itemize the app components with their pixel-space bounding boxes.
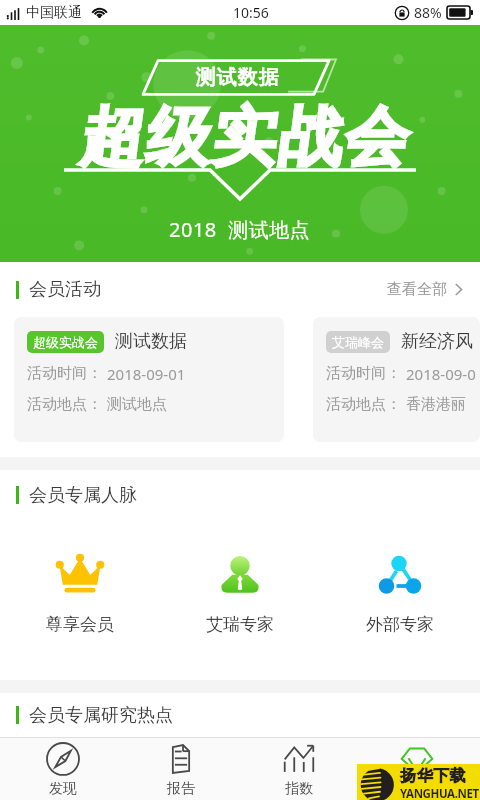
- button[interactable]: 报告: [126, 737, 236, 800]
- button[interactable]: 指数: [244, 737, 354, 800]
- staticText: 测试数据: [115, 330, 187, 353]
- staticText: 2018-09-0: [406, 364, 476, 384]
- staticText: 2018 测试地点: [169, 216, 311, 243]
- staticText: 活动地点：: [27, 395, 102, 414]
- button[interactable]: 会员: [362, 737, 472, 800]
- button[interactable]: 测试数据: [0, 25, 480, 262]
- staticText: 88%: [414, 3, 442, 22]
- button[interactable]: 外部专家: [320, 520, 480, 680]
- staticText: 香港港丽酒: [406, 395, 480, 414]
- staticText: 测试数据: [195, 65, 279, 90]
- staticText: 会员专属人脉: [29, 484, 137, 507]
- staticText: 指数: [285, 780, 313, 798]
- staticText: 活动时间：: [326, 364, 401, 383]
- button[interactable]: 发现: [8, 737, 118, 800]
- staticText: 发现: [49, 780, 77, 798]
- staticText: 超级实战会: [75, 97, 405, 178]
- staticText: 10:56: [233, 3, 269, 22]
- staticText: 测试地点: [107, 395, 167, 414]
- staticText: 2018-09-01: [107, 364, 186, 384]
- staticText: 扬华下载: [400, 766, 466, 786]
- staticText: 中国联通: [26, 4, 82, 22]
- button[interactable]: 查看全部: [387, 280, 464, 299]
- staticText: 超级实战会: [33, 334, 98, 350]
- staticText: 报告: [167, 780, 195, 798]
- button[interactable]: 超级实战会: [14, 317, 284, 442]
- staticText: 活动地点：: [326, 395, 401, 414]
- staticText: 会员: [403, 780, 431, 798]
- button[interactable]: 艾瑞专家: [160, 520, 320, 680]
- staticText: 艾瑞峰会: [332, 334, 384, 350]
- button[interactable]: 尊享会员: [0, 520, 160, 680]
- staticText: YANGHUA.NET: [400, 786, 479, 800]
- staticText: 外部专家: [366, 614, 434, 635]
- staticText: 会员活动: [29, 278, 101, 301]
- staticText: 尊享会员: [46, 614, 114, 635]
- staticText: 会员专属研究热点: [29, 704, 173, 727]
- staticText: 艾瑞专家: [206, 614, 274, 635]
- button[interactable]: 艾瑞峰会: [313, 317, 480, 442]
- staticText: 查看全部: [387, 280, 447, 299]
- staticText: 活动时间：: [27, 364, 102, 383]
- staticText: 新经济风暴: [401, 330, 480, 353]
